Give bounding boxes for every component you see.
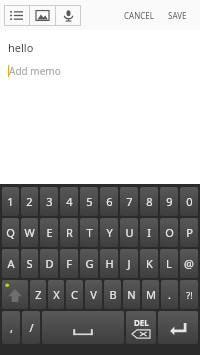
- staticText: E: [46, 225, 53, 240]
- staticText: @: [184, 256, 194, 271]
- staticText: Y: [106, 225, 113, 240]
- staticText: R: [66, 225, 73, 240]
- staticText: Add memo: [9, 64, 61, 78]
- button[interactable]: F: [60, 249, 78, 278]
- staticText: 2: [26, 194, 33, 209]
- button[interactable]: SAVE: [163, 6, 192, 25]
- staticText: 8: [146, 194, 153, 209]
- staticText: M: [146, 287, 156, 302]
- staticText: 7: [126, 194, 133, 209]
- button[interactable]: E: [40, 218, 58, 247]
- button[interactable]: B: [104, 280, 121, 309]
- button[interactable]: Insert image: [30, 5, 55, 26]
- button[interactable]: 9: [160, 187, 178, 216]
- staticText: Z: [35, 287, 42, 302]
- button[interactable]: ,: [2, 311, 20, 344]
- staticText: CANCEL: [124, 10, 154, 21]
- button[interactable]: V: [85, 280, 102, 309]
- button[interactable]: /: [22, 311, 40, 344]
- button[interactable]: D: [40, 249, 58, 278]
- button[interactable]: C: [66, 280, 83, 309]
- button[interactable]: L: [160, 249, 178, 278]
- button[interactable]: J: [120, 249, 138, 278]
- button[interactable]: Add memo: [8, 64, 192, 78]
- staticText: S: [26, 256, 33, 271]
- button[interactable]: S: [21, 249, 38, 278]
- button[interactable]: [42, 311, 124, 344]
- staticText: 1: [7, 194, 14, 209]
- button[interactable]: 4: [60, 187, 78, 216]
- button[interactable]: I: [140, 218, 158, 247]
- button[interactable]: K: [140, 249, 158, 278]
- button[interactable]: N: [123, 280, 140, 309]
- staticText: hello: [8, 40, 34, 55]
- staticText: D: [45, 256, 54, 271]
- staticText: C: [71, 287, 78, 302]
- staticText: Q: [6, 225, 15, 240]
- button[interactable]: X: [48, 280, 64, 309]
- button[interactable]: 1: [2, 187, 19, 216]
- button[interactable]: 7: [120, 187, 138, 216]
- staticText: 5: [86, 194, 93, 209]
- button[interactable]: Checklist: [4, 5, 29, 26]
- staticText: F: [66, 256, 72, 271]
- button[interactable]: 3: [40, 187, 58, 216]
- button[interactable]: W: [21, 218, 38, 247]
- staticText: DEL: [134, 317, 149, 328]
- button[interactable]: DEL: [126, 311, 156, 344]
- button[interactable]: U: [120, 218, 138, 247]
- button[interactable]: 5: [80, 187, 98, 216]
- staticText: V: [90, 287, 97, 302]
- staticText: J: [127, 256, 131, 271]
- button[interactable]: G: [80, 249, 98, 278]
- staticText: 9: [166, 194, 173, 209]
- staticText: I: [147, 225, 151, 240]
- button[interactable]: Q: [2, 218, 19, 247]
- staticText: P: [186, 225, 193, 240]
- staticText: /: [29, 320, 34, 335]
- staticText: 4: [66, 194, 73, 209]
- button[interactable]: 0: [180, 187, 198, 216]
- staticText: G: [85, 256, 94, 271]
- button[interactable]: hello: [8, 40, 192, 55]
- staticText: B: [109, 287, 117, 302]
- staticText: T: [86, 225, 93, 240]
- button[interactable]: .: [161, 280, 178, 309]
- staticText: 3: [46, 194, 53, 209]
- staticText: ?!: [186, 289, 193, 301]
- button[interactable]: R: [60, 218, 78, 247]
- button[interactable]: M: [142, 280, 159, 309]
- staticText: W: [24, 225, 35, 240]
- staticText: X: [53, 287, 60, 302]
- button[interactable]: 8: [140, 187, 158, 216]
- button[interactable]: 6: [100, 187, 118, 216]
- staticText: L: [166, 256, 172, 271]
- button[interactable]: H: [100, 249, 118, 278]
- button[interactable]: P: [180, 218, 198, 247]
- button[interactable]: A: [2, 249, 19, 278]
- button[interactable]: @: [180, 249, 198, 278]
- button[interactable]: ?!: [180, 280, 198, 309]
- staticText: .: [168, 287, 171, 302]
- button[interactable]: T: [80, 218, 98, 247]
- staticText: 6: [106, 194, 113, 209]
- staticText: 0: [186, 194, 193, 209]
- staticText: K: [146, 256, 153, 271]
- staticText: ,: [10, 320, 13, 335]
- staticText: O: [165, 225, 174, 240]
- button[interactable]: Voice input: [56, 5, 81, 26]
- button[interactable]: 2: [21, 187, 38, 216]
- button[interactable]: [2, 280, 28, 309]
- button[interactable]: CANCEL: [119, 6, 159, 25]
- button[interactable]: Z: [30, 280, 46, 309]
- staticText: SAVE: [168, 10, 187, 21]
- staticText: A: [7, 256, 15, 271]
- staticText: N: [127, 287, 136, 302]
- staticText: U: [125, 225, 134, 240]
- button[interactable]: [158, 311, 198, 344]
- button[interactable]: Y: [100, 218, 118, 247]
- staticText: H: [105, 256, 114, 271]
- button[interactable]: O: [160, 218, 178, 247]
